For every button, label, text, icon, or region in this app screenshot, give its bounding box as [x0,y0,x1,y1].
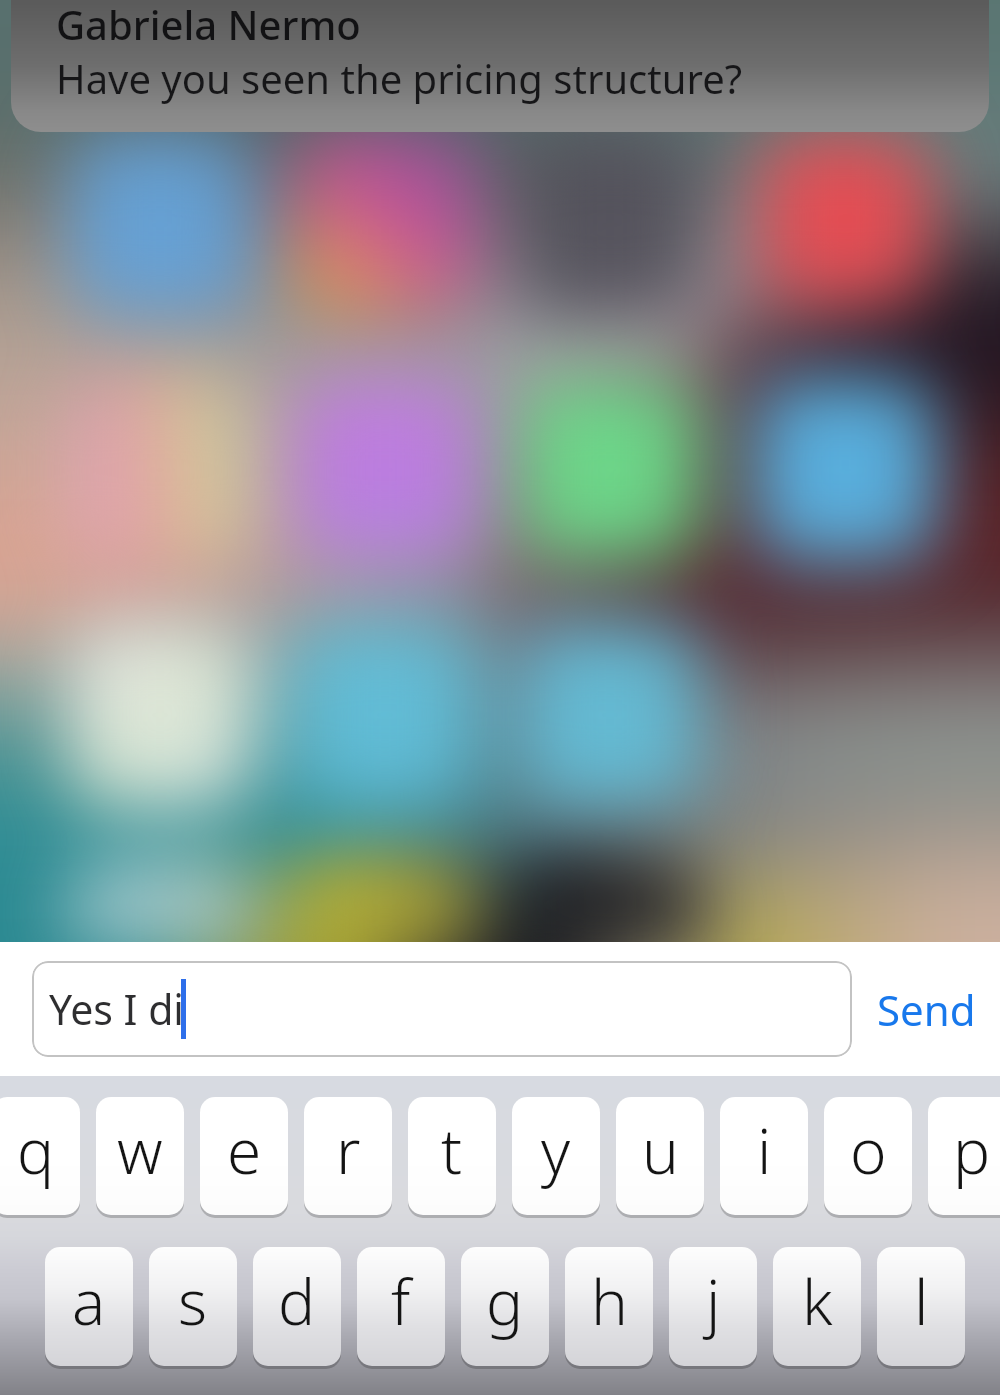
button[interactable]: Gabriela Nermo [11,0,989,132]
staticText: d [278,1259,316,1343]
staticText: a [72,1259,106,1343]
button[interactable]: i [720,1097,808,1215]
staticText: s [178,1259,208,1343]
button[interactable]: k [773,1247,861,1366]
button[interactable]: s [149,1247,237,1366]
staticText: Gabriela Nermo [56,0,361,51]
staticText: e [227,1108,262,1192]
staticText: Send [877,981,976,1038]
staticText: g [486,1259,524,1343]
button[interactable]: o [824,1097,912,1215]
staticText: k [802,1259,833,1343]
staticText: o [850,1108,887,1192]
staticText: j [706,1259,721,1343]
button[interactable]: g [461,1247,549,1366]
staticText: p [953,1108,991,1192]
staticText: f [391,1259,411,1343]
button[interactable]: j [669,1247,757,1366]
staticText: w [117,1108,163,1192]
button[interactable]: d [253,1247,341,1366]
button[interactable]: u [616,1097,704,1215]
button[interactable]: t [408,1097,496,1215]
staticText: r [336,1108,361,1192]
staticText: h [591,1259,628,1343]
button[interactable]: a [45,1247,133,1366]
button[interactable]: f [357,1247,445,1366]
staticText: Have you seen the pricing structure? [56,51,743,105]
button[interactable]: l [877,1247,965,1366]
staticText: t [441,1108,463,1192]
staticText: i [757,1108,772,1192]
button[interactable]: y [512,1097,600,1215]
button[interactable]: r [304,1097,392,1215]
staticText: Yes I di [49,981,184,1037]
button[interactable]: h [565,1247,653,1366]
staticText: u [642,1108,679,1192]
button[interactable]: w [96,1097,184,1215]
staticText: q [17,1108,55,1192]
staticText: l [914,1259,929,1343]
button[interactable]: p [928,1097,1000,1215]
button[interactable]: Yes I di [32,961,852,1057]
button[interactable]: q [0,1097,80,1215]
staticText: y [541,1108,571,1192]
button[interactable]: Send [852,961,1000,1057]
button[interactable]: e [200,1097,288,1215]
